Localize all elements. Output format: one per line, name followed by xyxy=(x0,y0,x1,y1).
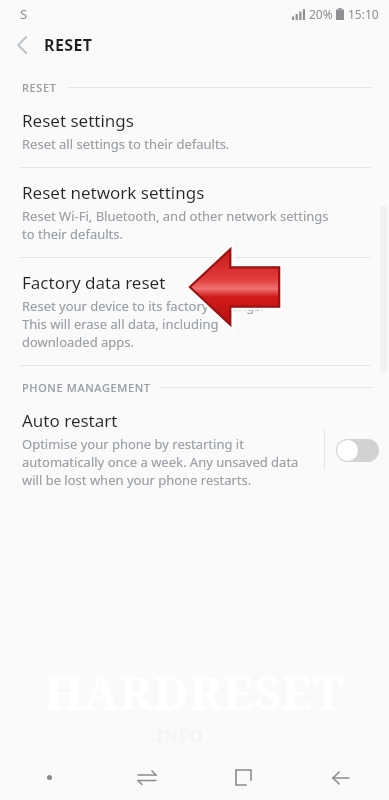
staticText: Reset Wi-Fi, Bluetooth, and other networ… xyxy=(22,207,329,225)
button[interactable]: Factory data reset xyxy=(0,258,389,365)
button[interactable]: Back xyxy=(292,755,389,800)
staticText: Auto restart xyxy=(22,409,118,432)
staticText: Reset your device to its factory setting… xyxy=(22,297,264,315)
staticText: Factory data reset xyxy=(22,271,166,294)
button[interactable]: Back xyxy=(0,28,44,62)
staticText: to their defaults. xyxy=(22,225,123,243)
staticText: automatically once a week. Any unsaved d… xyxy=(22,453,299,471)
button[interactable]: Menu indicator xyxy=(0,755,98,800)
staticText: Reset network settings xyxy=(22,181,205,204)
staticText: RESET xyxy=(22,80,57,95)
button[interactable]: Recent apps xyxy=(195,755,292,800)
button[interactable]: Auto restart toggle xyxy=(325,422,389,478)
staticText: Reset all settings to their defaults. xyxy=(22,135,230,153)
staticText: RESET xyxy=(44,34,93,56)
button[interactable]: Recents menu xyxy=(98,755,195,800)
staticText: will be lost when your phone restarts. xyxy=(22,471,252,489)
staticText: This will erase all data, including xyxy=(22,315,219,333)
staticText: S xyxy=(20,5,28,23)
staticText: Reset settings xyxy=(22,109,134,132)
button[interactable]: Auto restart xyxy=(0,397,389,503)
button[interactable]: Reset settings xyxy=(0,97,389,167)
staticText: Optimise your phone by restarting it xyxy=(22,435,244,453)
staticText: 20% xyxy=(309,6,333,22)
staticText: 15:10 xyxy=(348,6,379,22)
staticText: PHONE MANAGEMENT xyxy=(22,380,151,395)
staticText: downloaded apps. xyxy=(22,333,135,351)
button[interactable]: Reset network settings xyxy=(0,168,389,257)
